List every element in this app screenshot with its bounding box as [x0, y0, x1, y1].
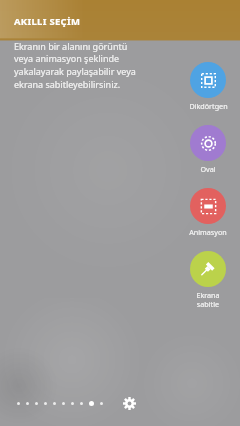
button[interactable]: Ekrana sabitle	[182, 251, 234, 309]
staticText: Ekranın bir alanını görüntü veya animasy…	[14, 40, 136, 91]
button[interactable]: Oval	[182, 125, 234, 174]
button[interactable]	[71, 402, 74, 405]
button[interactable]: Animasyon	[182, 188, 234, 237]
button[interactable]	[89, 401, 94, 406]
button[interactable]	[53, 402, 56, 405]
button[interactable]	[44, 402, 47, 405]
button[interactable]: Settings	[120, 394, 138, 412]
staticText: Animasyon	[189, 227, 227, 237]
button[interactable]	[35, 402, 38, 405]
staticText: Ekrana sabitle	[196, 290, 220, 309]
staticText: Dikdörtgen	[189, 101, 228, 111]
button[interactable]	[26, 402, 29, 405]
button[interactable]	[100, 402, 103, 405]
button[interactable]	[17, 402, 20, 405]
staticText: Oval	[200, 164, 216, 174]
button[interactable]	[62, 402, 65, 405]
button[interactable]	[80, 402, 83, 405]
staticText: AKILLI SEÇİM	[14, 15, 81, 28]
button[interactable]: Dikdörtgen	[182, 62, 234, 111]
